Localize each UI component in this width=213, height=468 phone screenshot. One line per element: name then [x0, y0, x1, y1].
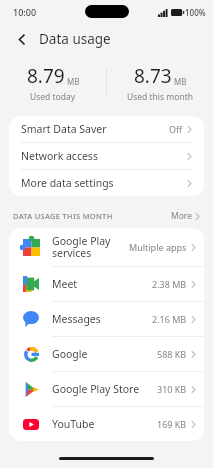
button[interactable]: Google Play Store [9, 372, 204, 406]
button[interactable]: Meet [9, 267, 204, 301]
staticText: Multiple apps [129, 241, 187, 253]
staticText: YouTube [52, 417, 157, 431]
staticText: 310 KB [157, 383, 187, 395]
staticText: Data usage [39, 30, 111, 48]
staticText: 10:00 [13, 6, 37, 18]
button[interactable]: Messages [9, 302, 204, 336]
staticText: 8.79 [27, 63, 65, 89]
staticText: DATA USAGE THIS MONTH [13, 211, 171, 221]
staticText: Meet [52, 277, 152, 291]
button[interactable]: More data settings [9, 170, 204, 196]
staticText: Used this month [127, 91, 193, 103]
staticText: MB [174, 76, 187, 87]
staticText: Smart Data Saver [21, 122, 169, 136]
staticText: Google [52, 347, 157, 361]
button[interactable]: Back [11, 28, 33, 50]
button[interactable]: Network access [9, 143, 204, 169]
staticText: 169 KB [157, 418, 187, 430]
button[interactable]: More [171, 210, 200, 222]
staticText: More data settings [21, 176, 187, 190]
staticText: Network access [21, 149, 187, 163]
button[interactable]: Smart Data Saver [9, 116, 204, 142]
staticText: 588 KB [157, 348, 187, 360]
staticText: Google Play services [52, 234, 129, 260]
staticText: Google Play Store [52, 382, 157, 396]
staticText: 8.73 [134, 63, 172, 89]
staticText: MB [67, 76, 80, 87]
staticText: 100% [185, 7, 206, 18]
staticText: Off [169, 123, 183, 135]
button[interactable]: YouTube [9, 407, 204, 441]
button[interactable]: Google [9, 337, 204, 371]
staticText: More [171, 210, 192, 222]
staticText: Used today [30, 91, 76, 103]
staticText: Messages [52, 312, 152, 326]
staticText: 2.16 MB [152, 313, 187, 325]
staticText: 2.38 MB [152, 278, 187, 290]
button[interactable]: Google Play services [9, 228, 204, 266]
